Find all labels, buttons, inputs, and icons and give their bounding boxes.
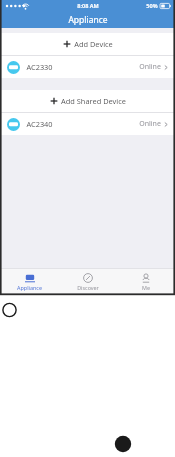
button[interactable]: Appliance: [0, 269, 59, 295]
staticText: Add Shared Device: [61, 96, 126, 106]
button[interactable]: Discover: [59, 269, 117, 295]
staticText: Discover: [77, 284, 99, 291]
staticText: AC2340: [26, 119, 53, 129]
staticText: Online: [139, 119, 161, 129]
staticText: 8:08 AM: [77, 2, 99, 10]
button[interactable]: Add Device: [0, 33, 175, 55]
staticText: Appliance: [68, 14, 108, 26]
button[interactable]: Add Shared Device: [0, 90, 175, 112]
staticText: AC2330: [26, 62, 53, 72]
staticText: Me: [142, 284, 150, 291]
button[interactable]: AC2340: [0, 113, 175, 135]
button[interactable]: AC2330: [0, 56, 175, 78]
staticText: Add Device: [74, 39, 113, 49]
staticText: Online: [139, 62, 161, 72]
staticText: Appliance: [17, 284, 42, 291]
staticText: 50%: [146, 2, 158, 10]
button[interactable]: Me: [117, 269, 175, 295]
